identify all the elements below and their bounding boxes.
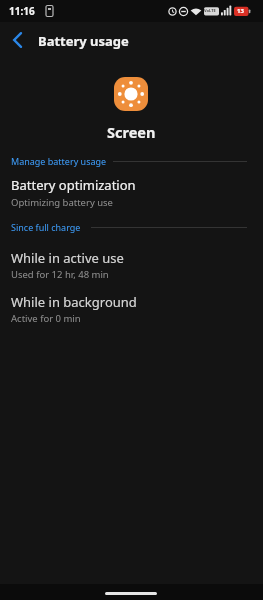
staticText: Manage battery usage: [11, 155, 107, 167]
staticText: Optimizing battery use: [11, 196, 113, 209]
button[interactable]: While in active use: [0, 249, 263, 280]
staticText: Battery optimization: [11, 176, 136, 194]
staticText: While in active use: [11, 249, 124, 267]
staticText: VoLTE: [204, 8, 216, 13]
staticText: Used for 12 hr, 48 min: [11, 268, 109, 281]
button[interactable]: While in background: [0, 293, 263, 324]
staticText: While in background: [11, 293, 137, 311]
staticText: Battery usage: [38, 32, 129, 50]
button[interactable]: Battery optimization: [0, 176, 263, 207]
staticText: Since full charge: [11, 221, 81, 233]
staticText: 13: [237, 7, 244, 15]
staticText: Active for 0 min: [11, 312, 81, 325]
button[interactable]: [6, 29, 28, 51]
staticText: Screen: [107, 122, 156, 142]
staticText: 11:16: [9, 4, 35, 18]
